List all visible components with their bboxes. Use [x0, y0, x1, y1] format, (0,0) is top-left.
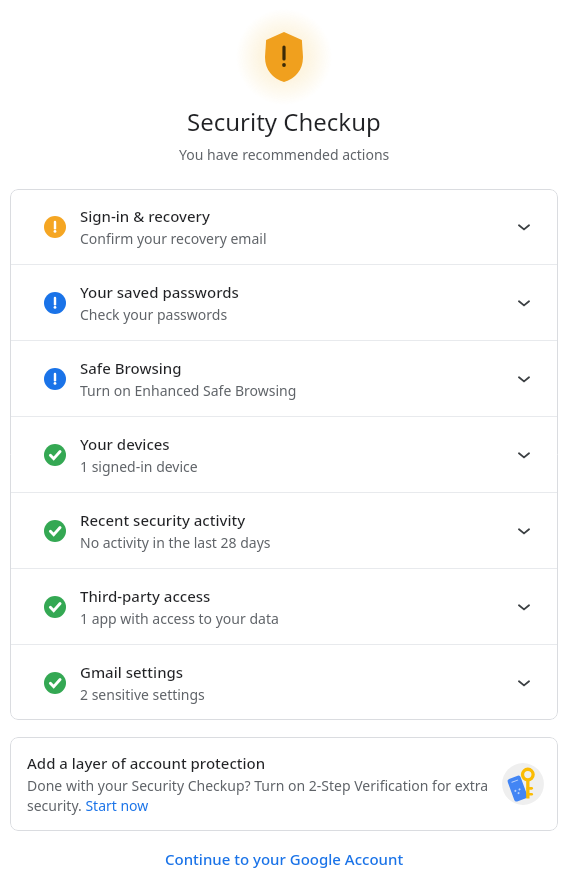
button[interactable]: Safe Browsing	[10, 341, 558, 416]
other: Expand Sign-in & recovery	[502, 205, 546, 249]
staticText: Security Checkup	[187, 105, 381, 138]
staticText: 2 sensitive settings	[80, 685, 205, 704]
button[interactable]: Continue to your Google Account	[157, 845, 412, 873]
button[interactable]: Gmail settings	[10, 645, 558, 720]
button[interactable]: Sign-in & recovery	[10, 189, 558, 264]
staticText: 1 signed-in device	[80, 457, 198, 476]
staticText: Sign-in & recovery	[80, 206, 210, 226]
staticText: Third-party access	[80, 586, 211, 606]
staticText: Done with your Security Checkup? Turn on…	[27, 776, 492, 815]
other: Expand Third-party access	[502, 585, 546, 629]
staticText: Gmail settings	[80, 662, 184, 682]
other: Expand Your saved passwords	[502, 281, 546, 325]
staticText: Check your passwords	[80, 305, 228, 324]
other: Expand Gmail settings	[502, 661, 546, 705]
staticText: Turn on Enhanced Safe Browsing	[80, 381, 297, 400]
other: Expand Your devices	[502, 433, 546, 477]
other: Expand Safe Browsing	[502, 357, 546, 401]
button[interactable]: Recent security activity	[10, 493, 558, 568]
staticText: Continue to your Google Account	[165, 849, 404, 869]
button[interactable]: Add a layer of account protection	[10, 737, 558, 831]
staticText: Add a layer of account protection	[27, 753, 266, 773]
staticText: You have recommended actions	[179, 145, 390, 164]
staticText: 1 app with access to your data	[80, 609, 279, 628]
staticText: Confirm your recovery email	[80, 229, 267, 248]
other: Expand Recent security activity	[502, 509, 546, 553]
staticText: Recent security activity	[80, 510, 246, 530]
staticText: Your devices	[80, 434, 170, 454]
button[interactable]: Your saved passwords	[10, 265, 558, 340]
staticText: Safe Browsing	[80, 358, 182, 378]
staticText: Your saved passwords	[80, 282, 239, 302]
button[interactable]: Your devices	[10, 417, 558, 492]
button[interactable]: Third-party access	[10, 569, 558, 644]
staticText: No activity in the last 28 days	[80, 533, 271, 552]
